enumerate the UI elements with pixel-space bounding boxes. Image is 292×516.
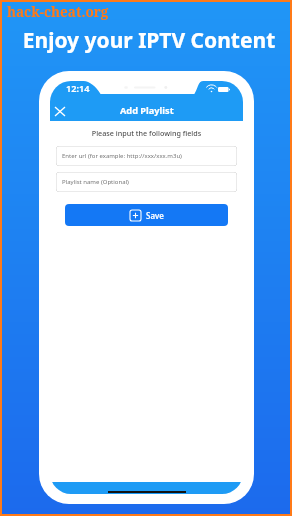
staticText: 12:14 xyxy=(66,82,90,95)
staticText: Enter url (for example: http://xxx/xxx.m… xyxy=(62,152,182,160)
staticText: Add Playlist xyxy=(120,104,174,117)
staticText: Save xyxy=(146,210,164,221)
button[interactable]: Playlist name (Optional) xyxy=(56,172,237,192)
button[interactable]: Close xyxy=(50,102,69,121)
staticText: Playlist name (Optional) xyxy=(62,178,129,186)
staticText: hack-cheat.org xyxy=(7,3,109,21)
button[interactable]: Enter url (for example: http://xxx/xxx.m… xyxy=(56,146,237,166)
button[interactable]: Save xyxy=(65,204,228,226)
staticText: Enjoy your IPTV Content xyxy=(5,26,292,55)
staticText: Please input the following fields xyxy=(50,128,243,138)
